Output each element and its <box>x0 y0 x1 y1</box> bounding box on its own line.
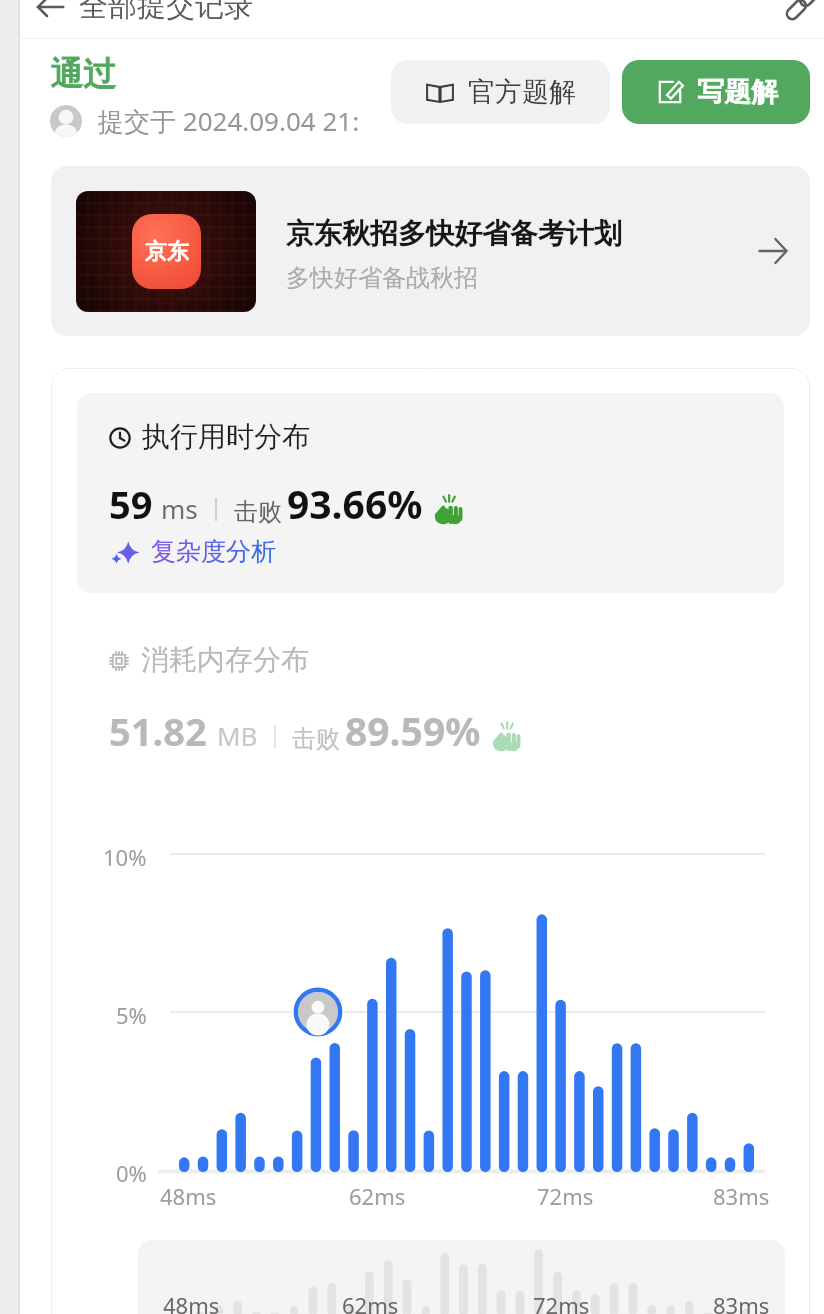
button[interactable]: Copy link <box>777 0 824 22</box>
staticText: 48ms <box>163 1290 220 1314</box>
staticText: 复杂度分析 <box>151 536 276 567</box>
staticText: 48ms <box>160 1181 217 1211</box>
button[interactable] <box>138 1240 785 1314</box>
staticText: 全部提交记录 <box>79 0 253 25</box>
staticText: 写题解 <box>697 75 778 109</box>
staticText: 京东秋招多快好省备考计划 <box>286 216 622 251</box>
staticText: 93.66% <box>287 477 423 530</box>
staticText: 83ms <box>713 1290 770 1314</box>
staticText: 72ms <box>537 1181 594 1211</box>
staticText: 官方题解 <box>468 75 576 109</box>
button[interactable]: 写题解 <box>622 60 810 124</box>
staticText: 62ms <box>342 1290 399 1314</box>
staticText: 5% <box>116 1000 147 1030</box>
button[interactable]: Back <box>26 0 74 26</box>
staticText: ms <box>161 491 198 526</box>
staticText: 51.82 <box>109 705 207 757</box>
button[interactable]: 复杂度分析 <box>112 536 276 567</box>
staticText: 83ms <box>713 1181 770 1211</box>
staticText: 击败 <box>292 724 340 754</box>
button[interactable]: 官方题解 <box>391 60 610 124</box>
staticText: 消耗内存分布 <box>141 642 309 677</box>
staticText: 89.59% <box>345 704 481 757</box>
staticText: 10% <box>103 842 147 872</box>
staticText: 京东 <box>145 238 189 266</box>
staticText: 击败 <box>234 497 282 527</box>
staticText: 72ms <box>533 1290 590 1314</box>
staticText: 多快好省备战秋招 <box>286 263 478 293</box>
staticText: 执行用时分布 <box>142 419 310 454</box>
button[interactable]: 京东 <box>51 166 810 336</box>
staticText: 提交于 2024.09.04 21: <box>98 103 360 139</box>
staticText: 59 <box>109 478 153 530</box>
staticText: 62ms <box>349 1181 406 1211</box>
staticText: MB <box>217 718 258 753</box>
staticText: 0% <box>116 1158 147 1188</box>
staticText: 通过 <box>50 53 116 95</box>
button[interactable]: 执行用时分布 <box>77 393 784 593</box>
